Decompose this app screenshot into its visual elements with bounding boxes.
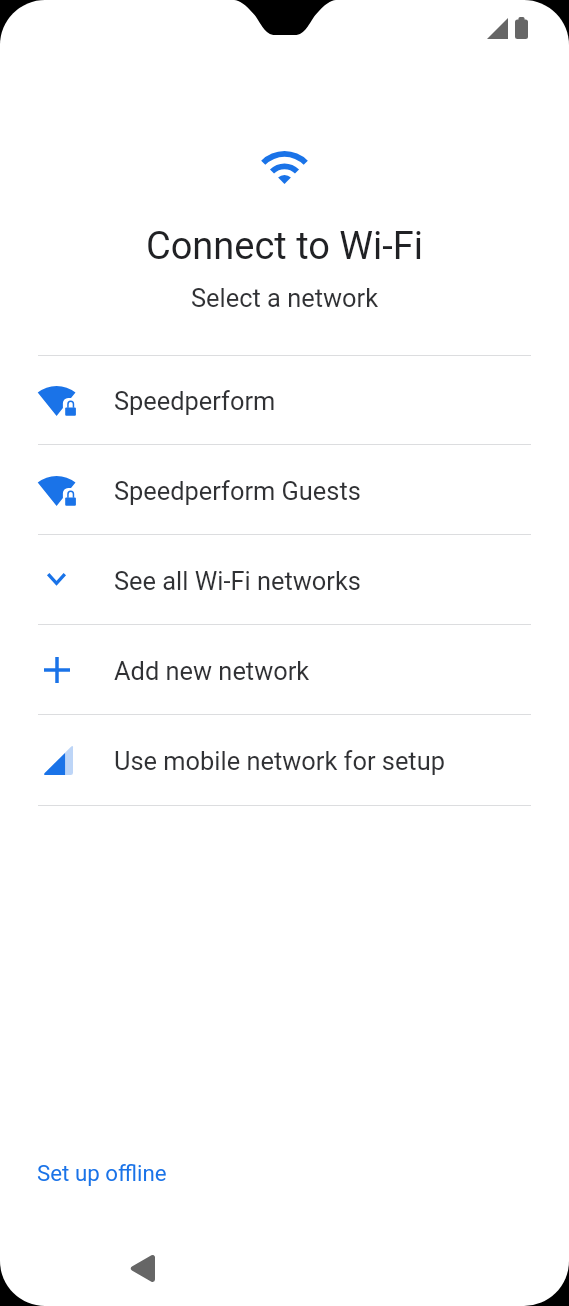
button[interactable]: Speedperform — [38, 356, 531, 444]
button[interactable]: Back — [115, 1241, 169, 1295]
staticText: Use mobile network for setup — [114, 746, 445, 776]
staticText: Add new network — [114, 656, 310, 686]
staticText: Select a network — [0, 283, 569, 313]
staticText: See all Wi-Fi networks — [114, 566, 361, 596]
staticText: Speedperform Guests — [114, 476, 361, 506]
staticText: Set up offline — [37, 1160, 167, 1186]
button[interactable]: See all Wi-Fi networks — [38, 535, 531, 624]
staticText: Speedperform — [114, 386, 276, 416]
button[interactable]: Speedperform Guests — [38, 445, 531, 534]
button[interactable]: Set up offline — [29, 1154, 175, 1192]
button[interactable]: Use mobile network for setup — [38, 715, 531, 805]
staticText: Connect to Wi-Fi — [0, 224, 569, 269]
button[interactable]: Add new network — [38, 625, 531, 714]
